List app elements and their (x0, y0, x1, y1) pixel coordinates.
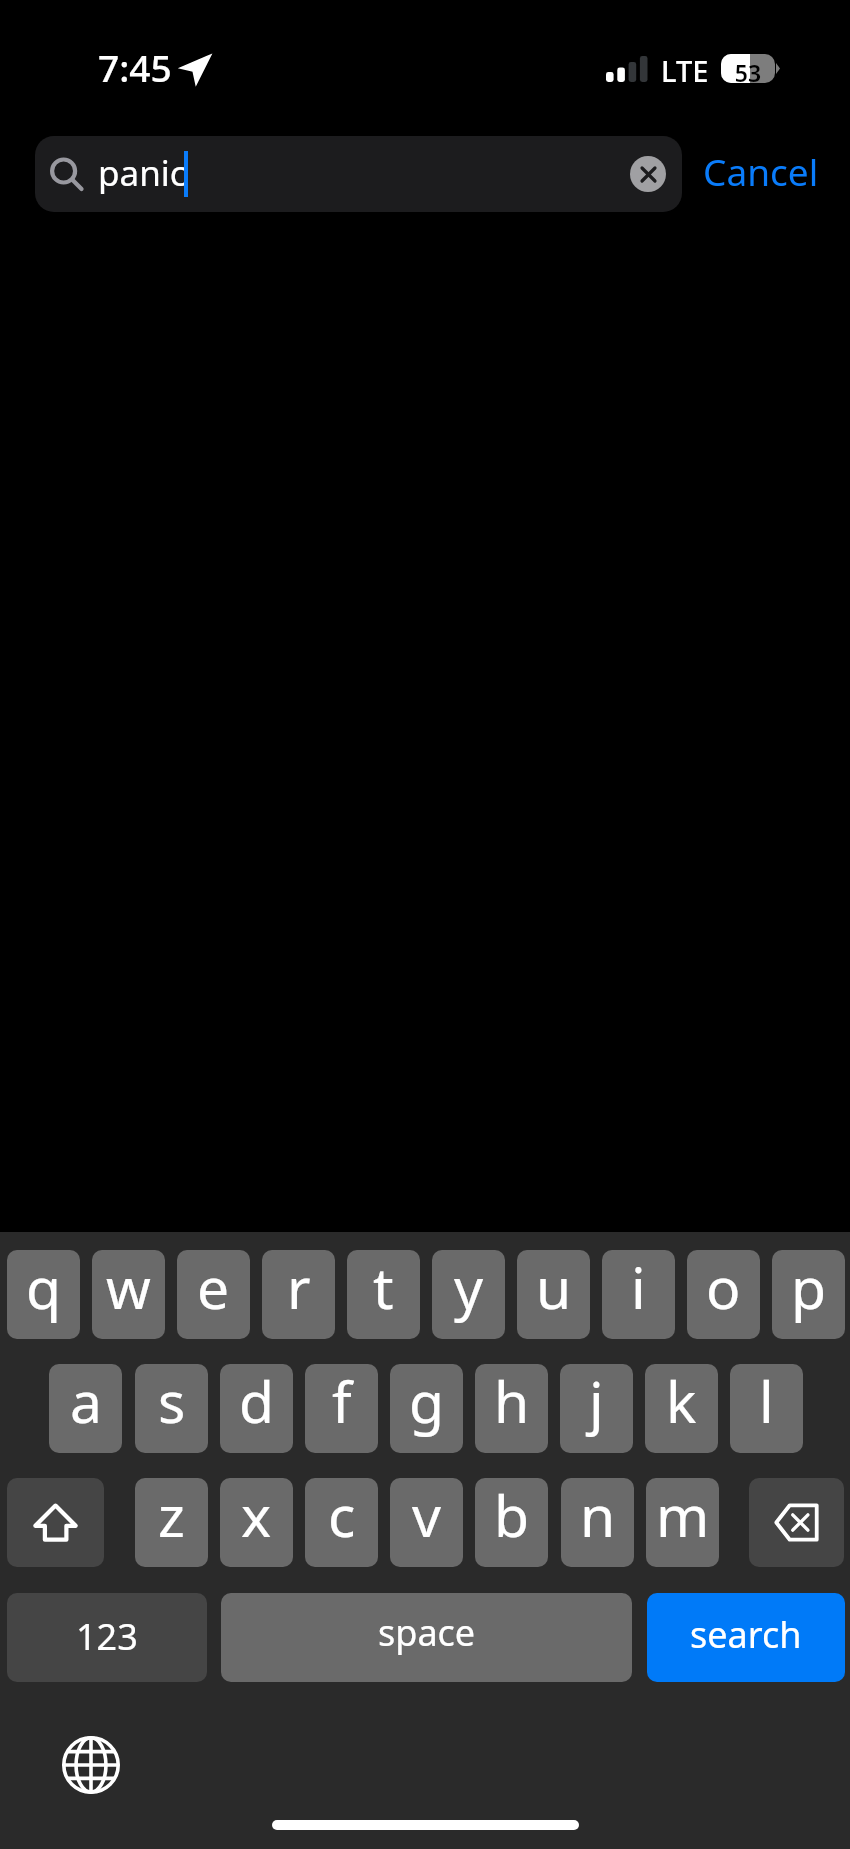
button[interactable]: n (561, 1478, 634, 1567)
button[interactable]: y (432, 1250, 505, 1339)
button[interactable]: d (220, 1364, 293, 1453)
staticText: q (26, 1250, 62, 1326)
staticText: w (106, 1250, 151, 1326)
staticText: 7:45 (98, 42, 172, 92)
button[interactable]: g (390, 1364, 463, 1453)
staticText: i (631, 1250, 646, 1326)
staticText: p (791, 1250, 827, 1326)
staticText: k (666, 1364, 697, 1440)
staticText: m (656, 1478, 710, 1554)
button[interactable]: b (475, 1478, 548, 1567)
button[interactable]: u (517, 1250, 590, 1339)
staticText: d (239, 1364, 275, 1440)
staticText: z (158, 1478, 185, 1554)
staticText: h (494, 1364, 530, 1440)
staticText: s (158, 1364, 186, 1440)
staticText: o (706, 1250, 741, 1326)
button[interactable]: q (7, 1250, 80, 1339)
staticText: a (70, 1364, 102, 1440)
button[interactable]: Shift (7, 1478, 104, 1567)
button[interactable]: e (177, 1250, 250, 1339)
button[interactable]: l (730, 1364, 803, 1453)
button[interactable]: p (772, 1250, 845, 1339)
staticText: 53 (721, 57, 775, 86)
button[interactable]: Backspace (749, 1478, 844, 1567)
staticText: f (332, 1364, 352, 1440)
button[interactable]: m (646, 1478, 719, 1567)
staticText: b (494, 1478, 530, 1554)
button[interactable]: 123 (7, 1593, 207, 1682)
staticText: space (378, 1608, 476, 1657)
button[interactable]: Clear text (630, 156, 666, 192)
staticText: t (373, 1250, 394, 1326)
staticText: j (589, 1364, 604, 1440)
button[interactable]: space (221, 1593, 632, 1682)
button[interactable]: o (687, 1250, 760, 1339)
staticText: n (580, 1478, 616, 1554)
staticText: u (536, 1250, 572, 1326)
button[interactable]: c (305, 1478, 378, 1567)
button[interactable]: j (560, 1364, 633, 1453)
staticText: c (328, 1478, 356, 1554)
button[interactable]: z (135, 1478, 208, 1567)
button[interactable]: r (262, 1250, 335, 1339)
staticText: l (759, 1364, 774, 1440)
button[interactable]: i (602, 1250, 675, 1339)
button[interactable]: f (305, 1364, 378, 1453)
staticText: LTE (661, 51, 709, 90)
button[interactable]: w (92, 1250, 165, 1339)
button[interactable]: k (645, 1364, 718, 1453)
staticText: 123 (76, 1612, 138, 1661)
button[interactable]: Cancel (698, 133, 823, 208)
button[interactable]: panic (35, 136, 682, 212)
button[interactable]: h (475, 1364, 548, 1453)
staticText: v (412, 1478, 441, 1554)
staticText: search (690, 1610, 802, 1659)
staticText: r (287, 1250, 311, 1326)
staticText: Cancel (703, 146, 819, 196)
staticText: y (454, 1250, 484, 1326)
button[interactable]: v (390, 1478, 463, 1567)
button[interactable]: a (49, 1364, 122, 1453)
staticText: g (409, 1364, 445, 1440)
button[interactable]: x (220, 1478, 293, 1567)
button[interactable]: t (347, 1250, 420, 1339)
button[interactable]: s (135, 1364, 208, 1453)
staticText: e (197, 1250, 230, 1326)
staticText: panic (98, 149, 187, 197)
button[interactable]: search (647, 1593, 845, 1682)
button[interactable]: Change keyboard language (55, 1729, 126, 1800)
staticText: x (241, 1478, 272, 1554)
